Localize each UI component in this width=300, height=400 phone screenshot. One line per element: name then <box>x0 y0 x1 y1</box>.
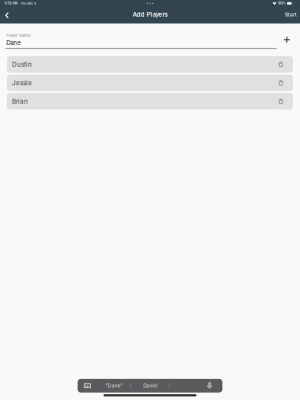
button[interactable]: Back <box>1 8 13 21</box>
button[interactable]: “Dane” <box>97 379 131 393</box>
staticText: Daniel <box>143 383 157 388</box>
staticText: Start <box>285 11 297 18</box>
staticText: Add Players <box>132 11 167 18</box>
button[interactable]: Dustin <box>7 56 293 72</box>
staticText: Brian <box>12 97 28 105</box>
button[interactable]: Show keyboard <box>78 379 97 393</box>
staticText: 100% <box>278 1 286 5</box>
staticText: “Dane” <box>105 383 122 389</box>
button[interactable]: Add player <box>280 33 293 46</box>
button[interactable]: Brian <box>7 93 293 109</box>
staticText: Dustin <box>12 60 32 68</box>
staticText: Thu Dec 9 <box>20 1 36 5</box>
button[interactable]: Start <box>281 8 297 21</box>
staticText: Jessie <box>12 79 32 87</box>
staticText: 9:59 AM <box>4 1 17 5</box>
staticText: Dane <box>6 39 21 46</box>
button[interactable]: Jessie <box>7 75 293 91</box>
staticText: Player Name <box>6 33 30 38</box>
button[interactable]: Daniel <box>131 379 169 393</box>
button[interactable]: Dictate <box>204 379 216 393</box>
